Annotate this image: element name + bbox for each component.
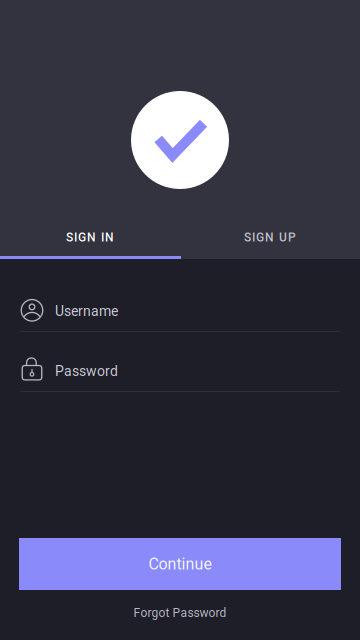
button[interactable]: Username — [0, 288, 360, 332]
staticText: Forgot Password — [133, 606, 226, 620]
staticText: S I G N I N — [66, 230, 114, 245]
staticText: Username — [55, 303, 118, 319]
button[interactable]: Forgot Password — [0, 605, 360, 621]
button[interactable]: Continue — [19, 538, 341, 590]
staticText: Continue — [148, 555, 211, 573]
staticText: S I G N U P — [244, 230, 296, 245]
button[interactable]: S I G N I N — [0, 226, 180, 256]
button[interactable]: Password — [0, 348, 360, 392]
button[interactable]: S I G N U P — [180, 226, 360, 256]
staticText: Password — [55, 363, 118, 379]
